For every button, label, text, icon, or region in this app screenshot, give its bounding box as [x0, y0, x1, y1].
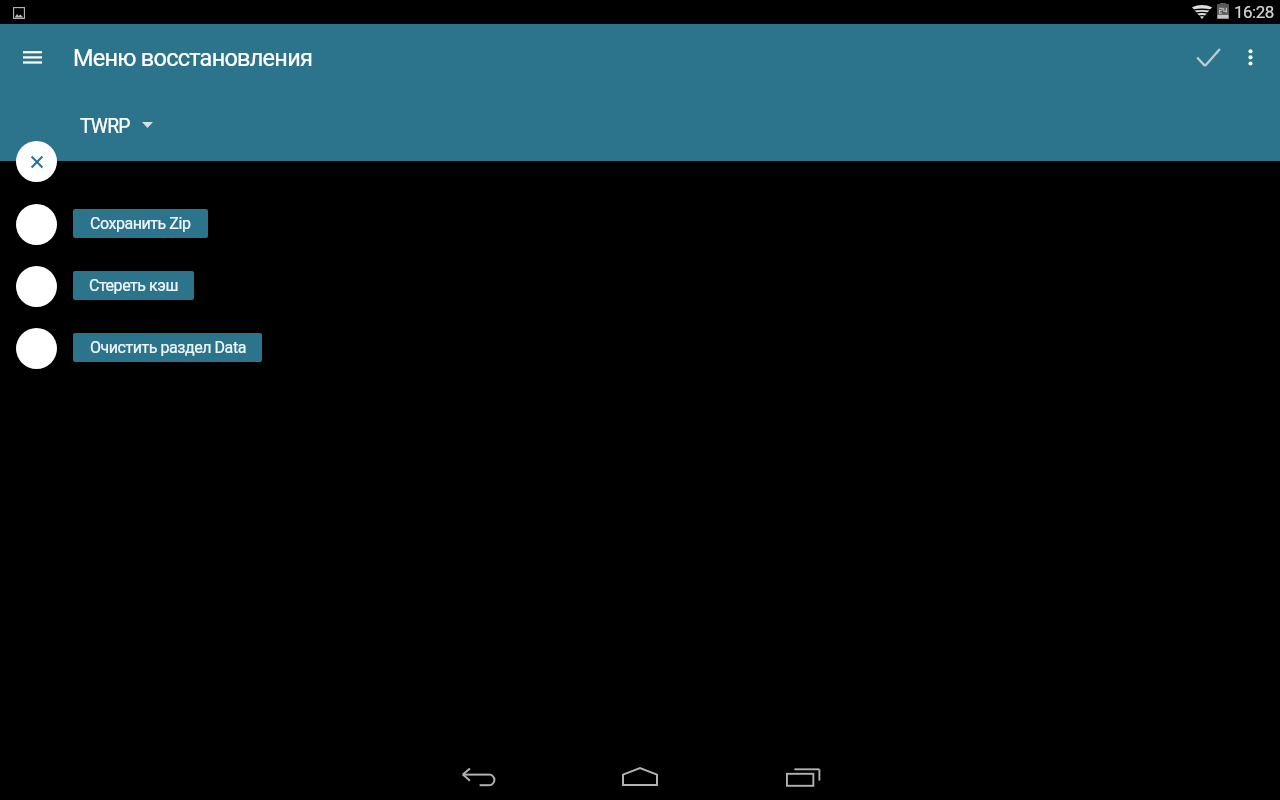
- button[interactable]: TWRP: [72, 110, 153, 142]
- button[interactable]: More options: [1226, 33, 1274, 81]
- staticText: TWRP: [80, 115, 130, 138]
- button[interactable]: Очистить раздел Data: [16, 328, 57, 369]
- staticText: Стереть кэш: [89, 276, 178, 295]
- button[interactable]: Open navigation menu: [8, 33, 56, 81]
- button[interactable]: Back: [454, 753, 502, 800]
- button[interactable]: Сохранить Zip: [16, 204, 57, 245]
- button[interactable]: Стереть кэш: [73, 271, 194, 300]
- staticText: Меню восстановления: [73, 44, 313, 72]
- staticText: Сохранить Zip: [90, 214, 191, 233]
- button[interactable]: Recent apps: [779, 752, 827, 800]
- button[interactable]: Стереть кэш: [16, 266, 57, 307]
- button[interactable]: Confirm: [1184, 33, 1232, 81]
- button[interactable]: Сохранить Zip: [73, 209, 208, 238]
- button[interactable]: Очистить раздел Data: [73, 333, 262, 362]
- button[interactable]: Close menu: [16, 141, 57, 182]
- button[interactable]: Home: [616, 752, 664, 800]
- staticText: 16:28: [1234, 2, 1274, 22]
- staticText: Очистить раздел Data: [90, 338, 246, 357]
